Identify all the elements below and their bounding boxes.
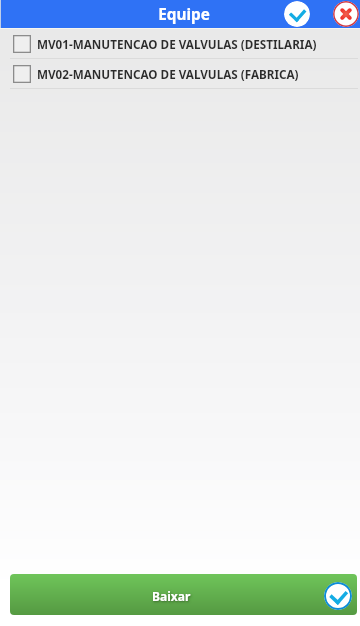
staticText: Baixar bbox=[152, 588, 191, 604]
staticText: MV02-MANUTENCAO DE VALVULAS (FABRICA) bbox=[37, 66, 299, 82]
button[interactable]: Confirmar bbox=[284, 1, 310, 27]
button[interactable]: MV02-MANUTENCAO DE VALVULAS (FABRICA) bbox=[0, 59, 360, 88]
button[interactable]: Fechar bbox=[333, 1, 359, 27]
button[interactable]: Baixar bbox=[10, 574, 357, 615]
staticText: Equipe bbox=[158, 4, 210, 25]
staticText: MV01-MANUTENCAO DE VALVULAS (DESTILARIA) bbox=[37, 36, 317, 52]
button[interactable]: MV01-MANUTENCAO DE VALVULAS (DESTILARIA) bbox=[0, 29, 360, 58]
other: Confirmar download bbox=[324, 582, 352, 610]
